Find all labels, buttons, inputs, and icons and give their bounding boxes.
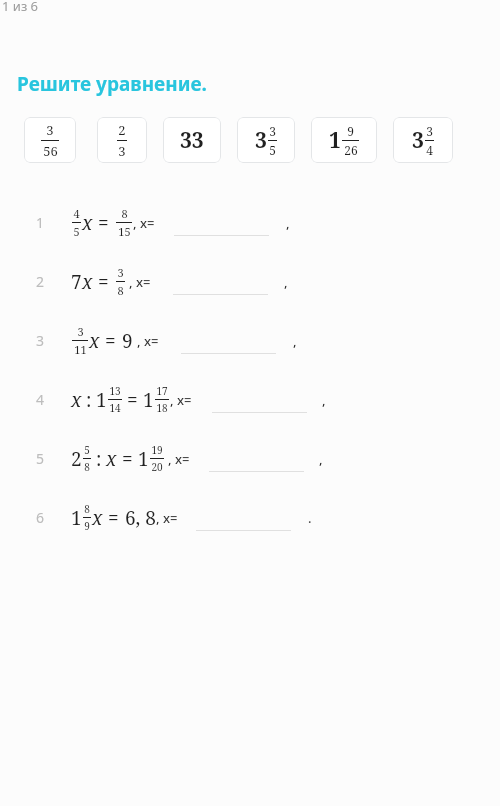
button[interactable] bbox=[209, 446, 304, 472]
staticText: 5 bbox=[36, 449, 45, 468]
staticText: 2 bbox=[36, 272, 45, 291]
staticText: x bbox=[89, 328, 100, 354]
button[interactable] bbox=[196, 505, 291, 531]
button[interactable] bbox=[173, 269, 268, 295]
staticText: 4 bbox=[73, 206, 80, 221]
staticText: 3 bbox=[426, 123, 433, 139]
staticText: 4 bbox=[426, 142, 433, 158]
staticText: , bbox=[168, 450, 172, 468]
staticText: x= bbox=[163, 509, 178, 527]
staticText: 9 bbox=[122, 328, 133, 354]
staticText: , bbox=[319, 450, 323, 468]
button[interactable]: 3 bbox=[237, 117, 295, 163]
button[interactable]: 2 bbox=[97, 117, 147, 163]
staticText: 3 bbox=[77, 324, 84, 339]
staticText: x bbox=[82, 210, 93, 236]
staticText: , bbox=[137, 332, 141, 350]
button[interactable]: 3 bbox=[24, 117, 76, 163]
staticText: 1 bbox=[36, 213, 45, 232]
staticText: , bbox=[286, 214, 290, 232]
staticText: 1 bbox=[96, 387, 107, 413]
button[interactable] bbox=[181, 328, 276, 354]
staticText: 3 bbox=[46, 121, 54, 139]
staticText: x bbox=[71, 387, 82, 413]
staticText: 3 bbox=[255, 126, 267, 155]
staticText: 33 bbox=[180, 126, 204, 155]
staticText: x bbox=[82, 269, 93, 295]
staticText: , bbox=[170, 391, 174, 409]
staticText: 8 bbox=[84, 460, 90, 474]
button[interactable] bbox=[212, 387, 307, 413]
staticText: x= bbox=[140, 214, 155, 232]
staticText: 2 bbox=[71, 446, 82, 472]
staticText: x bbox=[92, 505, 103, 531]
staticText: 8 bbox=[117, 283, 124, 298]
staticText: . bbox=[308, 509, 312, 527]
staticText: 11 bbox=[74, 342, 87, 357]
button[interactable]: 3 bbox=[393, 117, 453, 163]
staticText: x= bbox=[177, 391, 192, 409]
staticText: : bbox=[86, 387, 92, 413]
staticText: 5 bbox=[269, 142, 276, 158]
staticText: , bbox=[156, 509, 160, 527]
staticText: = bbox=[98, 269, 109, 295]
staticText: 1 из 6 bbox=[2, 0, 39, 13]
staticText: x bbox=[106, 446, 117, 472]
staticText: 1 bbox=[138, 446, 149, 472]
staticText: 8 bbox=[121, 206, 128, 221]
staticText: 56 bbox=[43, 142, 58, 160]
staticText: 3 bbox=[36, 331, 45, 350]
staticText: 17 bbox=[156, 384, 168, 398]
staticText: : bbox=[96, 446, 102, 472]
staticText: 3 bbox=[412, 126, 424, 155]
staticText: 1 bbox=[329, 126, 341, 155]
staticText: 2 bbox=[118, 121, 126, 139]
staticText: 19 bbox=[151, 443, 163, 457]
staticText: 13 bbox=[109, 384, 121, 398]
staticText: 4 bbox=[36, 390, 45, 409]
staticText: 5 bbox=[84, 443, 90, 457]
staticText: 1 bbox=[71, 505, 82, 531]
staticText: 6, 8 bbox=[125, 505, 156, 531]
button[interactable]: 1 bbox=[311, 117, 377, 163]
staticText: 9 bbox=[84, 519, 90, 533]
staticText: , bbox=[284, 273, 288, 291]
staticText: 3 bbox=[118, 142, 126, 160]
staticText: 9 bbox=[347, 123, 354, 139]
staticText: x= bbox=[175, 450, 190, 468]
staticText: 18 bbox=[156, 401, 168, 415]
staticText: 1 bbox=[143, 387, 154, 413]
button[interactable] bbox=[174, 210, 269, 236]
staticText: 6 bbox=[36, 508, 45, 527]
staticText: 15 bbox=[118, 224, 131, 239]
staticText: = bbox=[108, 505, 119, 531]
staticText: = bbox=[127, 387, 138, 413]
staticText: Решите уравнение. bbox=[17, 71, 207, 97]
staticText: 8 bbox=[84, 502, 90, 516]
staticText: , bbox=[133, 214, 137, 232]
staticText: , bbox=[293, 332, 297, 350]
staticText: x= bbox=[144, 332, 159, 350]
staticText: 20 bbox=[151, 460, 163, 474]
staticText: = bbox=[122, 446, 133, 472]
staticText: 14 bbox=[109, 401, 121, 415]
staticText: = bbox=[105, 328, 116, 354]
staticText: 5 bbox=[73, 224, 80, 239]
staticText: 3 bbox=[269, 123, 276, 139]
staticText: 3 bbox=[117, 265, 124, 280]
staticText: 7 bbox=[71, 269, 82, 295]
staticText: , bbox=[129, 273, 133, 291]
staticText: = bbox=[98, 210, 109, 236]
staticText: 26 bbox=[344, 142, 358, 158]
staticText: x= bbox=[136, 273, 151, 291]
button[interactable]: 33 bbox=[163, 117, 221, 163]
staticText: , bbox=[322, 391, 326, 409]
